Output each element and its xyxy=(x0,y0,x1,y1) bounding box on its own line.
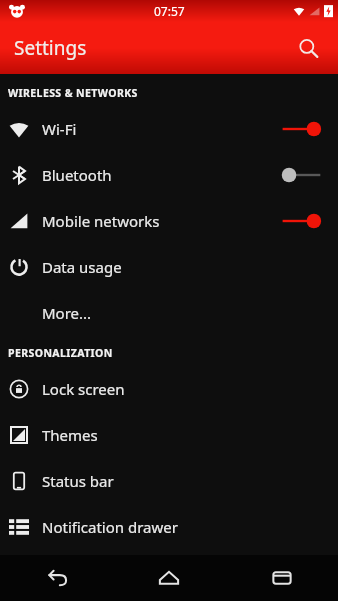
staticText: Data usage xyxy=(42,257,324,277)
button[interactable]: Bluetooth xyxy=(0,152,338,198)
button[interactable]: On xyxy=(278,207,324,235)
staticText: Wi-Fi xyxy=(42,119,278,139)
button[interactable]: Off xyxy=(278,161,324,189)
staticText: Notification drawer xyxy=(42,517,324,537)
staticText: WIRELESS & NETWORKS xyxy=(8,86,138,100)
button[interactable]: Recents xyxy=(225,555,338,601)
staticText: Bluetooth xyxy=(42,165,278,185)
button[interactable]: Themes xyxy=(0,412,338,458)
button[interactable]: Wi-Fi xyxy=(0,106,338,152)
staticText: Themes xyxy=(42,425,324,445)
button[interactable]: Back xyxy=(0,555,112,601)
button[interactable]: On xyxy=(278,115,324,143)
staticText: PERSONALIZATION xyxy=(8,346,113,360)
staticText: Mobile networks xyxy=(42,211,278,231)
staticText: More... xyxy=(42,303,324,323)
button[interactable]: Search xyxy=(288,28,328,68)
staticText: 07:57 xyxy=(154,3,185,19)
button[interactable]: Mobile networks xyxy=(0,198,338,244)
staticText: Settings xyxy=(14,35,87,61)
button[interactable]: Status bar xyxy=(0,458,338,504)
button[interactable]: Home xyxy=(112,555,225,601)
staticText: Status bar xyxy=(42,471,324,491)
button[interactable]: Data usage xyxy=(0,244,338,290)
button[interactable]: Notification drawer xyxy=(0,504,338,550)
button[interactable]: More... xyxy=(0,290,338,336)
staticText: Lock screen xyxy=(42,379,324,399)
button[interactable]: Lock screen xyxy=(0,366,338,412)
